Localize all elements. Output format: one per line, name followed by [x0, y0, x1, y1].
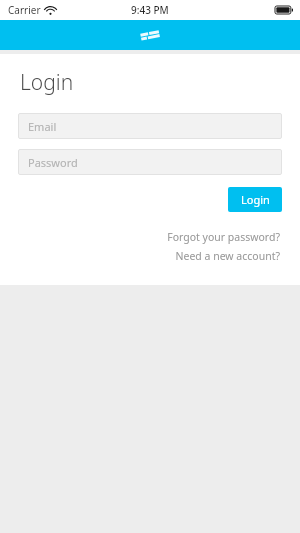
- staticText: Login: [20, 68, 74, 97]
- staticText: Carrier: [8, 3, 41, 17]
- button[interactable]: Login: [228, 187, 282, 212]
- other: App logo: [137, 26, 163, 44]
- button[interactable]: Need a new account?: [173, 248, 282, 264]
- staticText: Need a new account?: [175, 249, 280, 263]
- staticText: Email: [28, 119, 57, 134]
- button[interactable]: Email: [18, 113, 282, 139]
- staticText: 9:43 PM: [131, 3, 169, 17]
- staticText: Login: [241, 192, 270, 207]
- button[interactable]: Forgot your password?: [165, 229, 282, 245]
- button[interactable]: Password: [18, 149, 282, 175]
- staticText: Password: [28, 155, 78, 170]
- staticText: Forgot your password?: [167, 230, 280, 244]
